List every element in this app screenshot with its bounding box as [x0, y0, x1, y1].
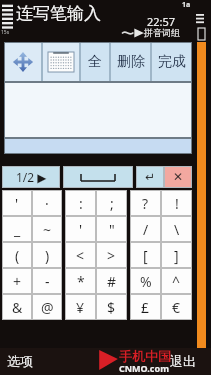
staticText: #	[107, 272, 117, 291]
staticText: (	[15, 246, 20, 265]
staticText: £	[141, 298, 150, 317]
button[interactable]: [	[130, 242, 161, 268]
staticText: 1/2 ▶	[16, 169, 47, 185]
button[interactable]: Move	[4, 42, 42, 82]
button[interactable]: 退出	[170, 353, 196, 369]
staticText: CNMO.com	[119, 362, 169, 374]
staticText: +	[13, 272, 22, 291]
staticText: -	[45, 272, 50, 291]
staticText: [	[143, 246, 148, 265]
button[interactable]: )	[32, 242, 62, 268]
button[interactable]: Close	[164, 166, 192, 188]
staticText: ;	[110, 194, 114, 213]
staticText: *	[77, 272, 85, 291]
button[interactable]: #	[96, 268, 127, 294]
staticText: @	[41, 298, 54, 317]
staticText: 完成	[158, 53, 186, 71]
staticText: _	[14, 220, 21, 239]
button[interactable]: @	[32, 294, 62, 320]
staticText: ?	[142, 194, 149, 213]
button[interactable]: Space	[63, 166, 133, 188]
staticText: '	[79, 220, 83, 239]
staticText: ↵	[145, 170, 156, 184]
staticText: &	[12, 298, 23, 317]
button[interactable]: $	[96, 294, 127, 320]
staticText: €	[172, 298, 181, 317]
staticText: %	[140, 272, 152, 291]
staticText: 全	[88, 53, 102, 71]
staticText: /	[143, 220, 149, 239]
button[interactable]: ^	[161, 268, 192, 294]
staticText: "	[109, 220, 115, 239]
staticText: ¥	[76, 298, 85, 317]
button[interactable]: £	[130, 294, 161, 320]
staticText: !	[175, 194, 179, 213]
button[interactable]: ·	[32, 190, 62, 216]
staticText: \	[174, 220, 180, 239]
staticText: 1a	[182, 0, 191, 10]
staticText: >	[107, 246, 116, 265]
button[interactable]: <	[65, 242, 96, 268]
button[interactable]: '	[2, 190, 32, 216]
button[interactable]: (	[2, 242, 32, 268]
button[interactable]: &	[2, 294, 32, 320]
button[interactable]: ~	[32, 216, 62, 242]
button[interactable]: Enter	[136, 166, 164, 188]
button[interactable]: !	[161, 190, 192, 216]
staticText: '	[15, 194, 19, 213]
button[interactable]: +	[2, 268, 32, 294]
button[interactable]: '	[65, 216, 96, 242]
staticText: $	[107, 298, 116, 317]
button[interactable]: ]	[161, 242, 192, 268]
button[interactable]: *	[65, 268, 96, 294]
staticText: 拼音词组	[144, 27, 180, 38]
button[interactable]: 全	[80, 42, 110, 82]
button[interactable]: "	[96, 216, 127, 242]
staticText: ~	[43, 220, 52, 239]
button[interactable]: 选项	[7, 353, 33, 369]
button[interactable]: /	[130, 216, 161, 242]
staticText: <	[76, 246, 85, 265]
button[interactable]: 1/2 ▶	[2, 166, 60, 188]
button[interactable]: >	[96, 242, 127, 268]
staticText: 连写笔输入	[16, 3, 101, 24]
staticText: ]	[174, 246, 179, 265]
staticText: )	[45, 246, 50, 265]
button[interactable]: %	[130, 268, 161, 294]
button[interactable]: _	[2, 216, 32, 242]
button[interactable]: -	[32, 268, 62, 294]
staticText: ·	[45, 194, 49, 213]
button[interactable]: ;	[96, 190, 127, 216]
staticText: 15s	[1, 29, 10, 36]
button[interactable]: €	[161, 294, 192, 320]
staticText: ^	[172, 272, 181, 291]
button[interactable]: 完成	[151, 42, 192, 82]
button[interactable]: Handwriting pad	[42, 42, 80, 82]
staticText: 22:57	[147, 14, 176, 29]
button[interactable]	[4, 138, 192, 154]
button[interactable]: \	[161, 216, 192, 242]
button[interactable]: ?	[130, 190, 161, 216]
staticText: 手机中国	[119, 348, 171, 364]
staticText: 删除	[117, 53, 145, 71]
button[interactable]: :	[65, 190, 96, 216]
staticText: :	[79, 194, 83, 213]
staticText: ✕	[173, 170, 184, 184]
button[interactable]: 删除	[110, 42, 151, 82]
button[interactable]: ¥	[65, 294, 96, 320]
